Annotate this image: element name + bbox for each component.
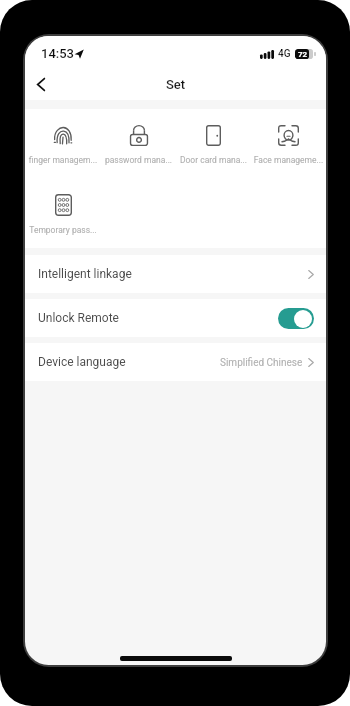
button[interactable]: Device language [25,343,326,381]
button[interactable]: Temporary pass... [25,193,101,235]
button[interactable]: Unlock Remote [25,299,326,337]
button[interactable]: Unlock Remote toggle [278,308,314,329]
staticText: Temporary pass... [26,225,100,235]
staticText: Face manageme... [252,155,325,165]
staticText: 4G [278,48,291,60]
staticText: finger managem... [26,155,100,165]
staticText: Door card mana... [177,155,250,165]
button[interactable]: Intelligent linkage [25,255,326,293]
button[interactable]: Door card mana... [176,123,251,165]
button[interactable]: Back [26,70,56,100]
staticText: 72 [298,50,308,59]
staticText: Intelligent linkage [38,267,132,281]
staticText: password mana... [102,155,175,165]
button[interactable]: finger managem... [25,123,101,165]
staticText: Simplified Chinese [220,357,303,369]
button[interactable]: password mana... [101,123,176,165]
staticText: Set [166,77,186,92]
staticText: Unlock Remote [38,311,119,325]
staticText: 14:53 [41,46,74,61]
staticText: Device language [38,355,126,369]
button[interactable]: Face manageme... [251,123,326,165]
